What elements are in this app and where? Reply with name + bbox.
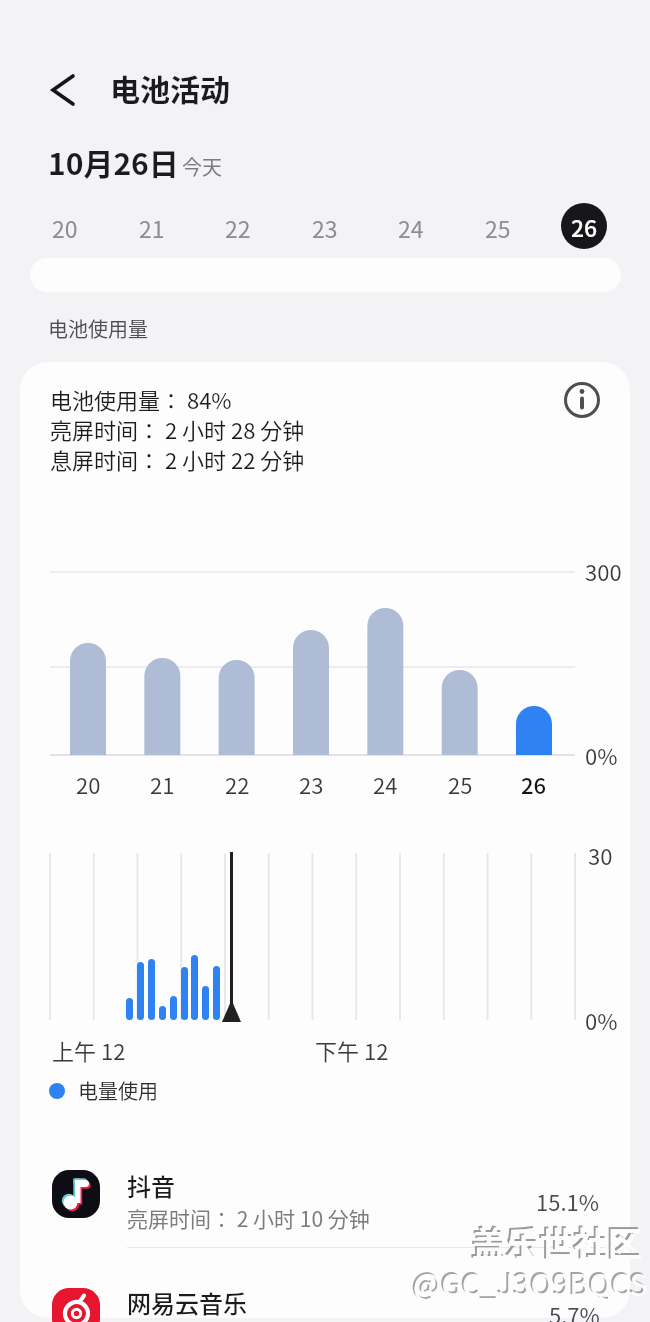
staticText: 电池使用量： 84%	[50, 383, 232, 415]
staticText: 5.7%	[549, 1298, 600, 1322]
staticText: @GC_J3O9BQCS	[411, 1259, 646, 1302]
button[interactable]	[30, 1152, 620, 1244]
staticText: 30	[588, 839, 613, 871]
staticText: @GC_J3O9BQCS	[413, 1261, 648, 1304]
staticText: 300	[585, 555, 622, 587]
staticText: 25	[448, 768, 473, 794]
staticText: 20	[76, 768, 101, 794]
staticText: 0%	[585, 1004, 618, 1036]
button[interactable]: 25	[468, 205, 528, 249]
staticText: 26	[521, 768, 547, 794]
staticText: 电池使用量	[48, 314, 148, 343]
button[interactable]	[30, 1258, 620, 1322]
button[interactable]: 23	[295, 205, 355, 249]
staticText: 20	[52, 211, 78, 244]
staticText: 26	[571, 210, 598, 243]
staticText: 电池活动	[110, 66, 230, 109]
staticText: 亮屏时间： 2 小时 28 分钟	[50, 413, 305, 445]
button[interactable]: 20	[35, 205, 95, 249]
staticText: 电量使用	[78, 1076, 158, 1105]
staticText: 网易云音乐	[127, 1285, 247, 1320]
button[interactable]	[40, 70, 84, 110]
staticText: 今天	[182, 152, 222, 181]
staticText: 24	[398, 211, 424, 244]
staticText: 10月26日	[48, 140, 179, 183]
staticText: 25	[485, 211, 511, 244]
staticText: 21	[139, 211, 165, 244]
staticText: 0%	[585, 739, 618, 771]
button[interactable]	[558, 376, 606, 424]
staticText: 22	[225, 211, 251, 244]
staticText: 15.1%	[536, 1185, 600, 1211]
staticText: 亮屏时间： 2 小时 10 分钟	[127, 1203, 370, 1233]
staticText: 21	[150, 768, 175, 794]
staticText: 23	[299, 768, 324, 794]
button[interactable]: 21	[122, 205, 182, 249]
staticText: 盖乐世社区	[472, 1218, 642, 1262]
button[interactable]: 24	[381, 205, 441, 249]
staticText: 下午 12	[315, 1034, 389, 1066]
staticText: 22	[225, 768, 250, 794]
button[interactable]: 26	[561, 203, 607, 249]
staticText: 23	[312, 211, 338, 244]
staticText: 24	[373, 768, 398, 794]
staticText: 息屏时间： 2 小时 22 分钟	[50, 443, 305, 475]
staticText: 抖音	[127, 1168, 175, 1203]
staticText: 盖乐世社区	[470, 1216, 640, 1260]
staticText: 上午 12	[52, 1034, 126, 1066]
button[interactable]: 22	[208, 205, 268, 249]
